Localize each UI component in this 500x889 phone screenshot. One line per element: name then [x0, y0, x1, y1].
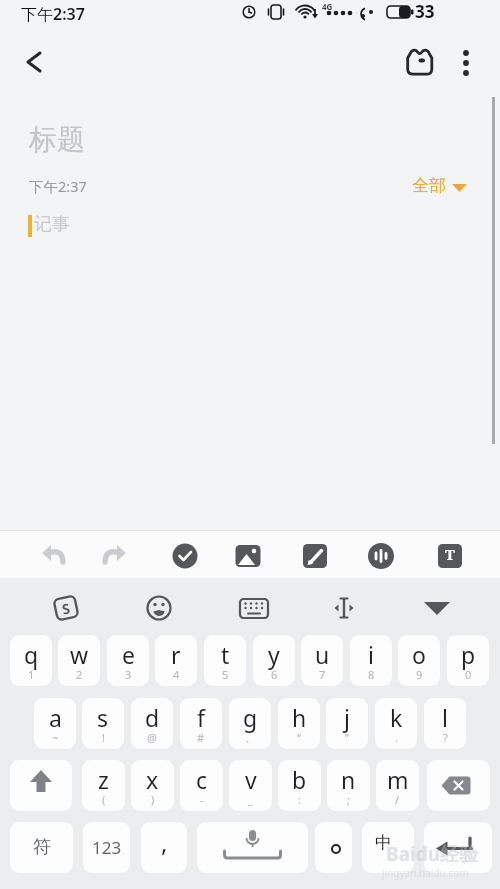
staticText: 0 [465, 667, 472, 682]
button[interactable]: e [107, 635, 149, 686]
staticText: 33 [415, 0, 435, 23]
button[interactable] [228, 534, 268, 574]
button[interactable]: a [34, 698, 76, 749]
button[interactable]: h [278, 698, 320, 749]
button[interactable] [419, 590, 455, 626]
button[interactable] [14, 42, 54, 82]
staticText: ~ [52, 730, 59, 745]
staticText: 6 [271, 667, 278, 682]
button[interactable]: w [58, 635, 100, 686]
staticText: : [298, 792, 301, 807]
staticText: / [395, 792, 400, 807]
button[interactable]: j [326, 698, 368, 749]
staticText: ( [102, 792, 106, 807]
staticText: q [24, 639, 39, 670]
staticText: _ [248, 792, 253, 807]
staticText: i [368, 639, 374, 670]
button[interactable] [424, 822, 492, 873]
button[interactable]: 全部 [406, 171, 476, 199]
button[interactable]: s [82, 698, 124, 749]
button[interactable]: c [180, 760, 223, 811]
staticText: 下午2:37 [21, 3, 85, 25]
staticText: h [292, 702, 307, 733]
button[interactable]: q [10, 635, 52, 686]
button[interactable] [295, 534, 335, 574]
staticText: a [49, 702, 62, 733]
staticText: # [197, 730, 205, 745]
button[interactable]: z [82, 760, 125, 811]
staticText: 1 [28, 667, 35, 682]
staticText: ! [102, 730, 105, 745]
staticText: 4G [322, 1, 333, 12]
button[interactable]: m [376, 760, 419, 811]
staticText: 符 [33, 836, 51, 859]
button[interactable]: l [424, 698, 466, 749]
staticText: - [200, 792, 204, 807]
staticText: m [387, 764, 409, 795]
button[interactable]: , [141, 822, 187, 873]
staticText: 全部 [412, 175, 446, 196]
button[interactable]: p [447, 635, 489, 686]
button[interactable]: r [155, 635, 197, 686]
button[interactable]: v [229, 760, 272, 811]
button[interactable]: 中 [362, 822, 414, 873]
button[interactable]: S [48, 590, 84, 626]
button[interactable]: i [350, 635, 392, 686]
staticText: 2 [76, 667, 83, 682]
button[interactable]: o [398, 635, 440, 686]
staticText: e [122, 639, 135, 670]
button[interactable] [326, 590, 362, 626]
staticText: r [171, 639, 181, 670]
button[interactable]: g [229, 698, 271, 749]
staticText: n [341, 764, 356, 795]
button[interactable] [197, 822, 308, 873]
staticText: y [268, 639, 280, 670]
staticText: z [98, 764, 109, 795]
button[interactable]: u [301, 635, 343, 686]
button[interactable]: n [327, 760, 370, 811]
staticText: s [97, 702, 109, 733]
staticText: g [243, 702, 258, 733]
button[interactable]: y [253, 635, 295, 686]
staticText: b [292, 764, 307, 795]
button[interactable]: t [204, 635, 246, 686]
button[interactable]: b [278, 760, 321, 811]
staticText: o [412, 639, 426, 670]
staticText: jingyan.baidu.com [382, 866, 469, 880]
button[interactable]: 123 [83, 822, 130, 873]
staticText: v [245, 764, 257, 795]
staticText: S [60, 598, 72, 619]
staticText: k [390, 702, 403, 733]
button[interactable] [361, 534, 401, 574]
button[interactable]: T [430, 534, 470, 574]
button[interactable] [450, 43, 482, 83]
button[interactable]: x [131, 760, 174, 811]
staticText: “ [297, 730, 301, 745]
button[interactable]: k [375, 698, 417, 749]
staticText: f [197, 702, 205, 733]
button[interactable] [141, 590, 177, 626]
staticText: u [315, 639, 330, 670]
staticText: 、 [245, 731, 256, 745]
staticText: 标题 [29, 122, 85, 157]
button[interactable] [32, 534, 72, 574]
button[interactable] [399, 46, 439, 80]
button[interactable]: 符 [10, 822, 73, 873]
button[interactable]: d [131, 698, 173, 749]
button[interactable] [315, 822, 352, 873]
staticText: , [161, 826, 168, 859]
button[interactable] [165, 534, 205, 574]
staticText: ? [443, 730, 448, 745]
button[interactable] [96, 534, 136, 574]
staticText: 中 [375, 832, 392, 853]
staticText: p [461, 639, 476, 670]
button[interactable]: f [180, 698, 222, 749]
staticText: 3 [125, 667, 132, 682]
staticText: T [445, 544, 455, 564]
staticText: 下午2:37 [29, 176, 87, 196]
staticText: @ [147, 730, 157, 745]
staticText: 4 [173, 667, 180, 682]
button[interactable] [427, 760, 490, 811]
button[interactable] [236, 590, 272, 626]
button[interactable] [10, 760, 72, 811]
